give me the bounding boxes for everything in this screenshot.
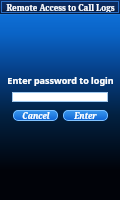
staticText: Cancel: [22, 110, 50, 121]
staticText: Enter: [74, 110, 97, 121]
button[interactable]: Cancel: [13, 110, 58, 121]
button[interactable]: [12, 92, 108, 102]
button[interactable]: Enter: [63, 110, 108, 121]
staticText: Enter password to login: [7, 74, 114, 86]
staticText: Remote Access to Call Logs: [6, 2, 115, 13]
